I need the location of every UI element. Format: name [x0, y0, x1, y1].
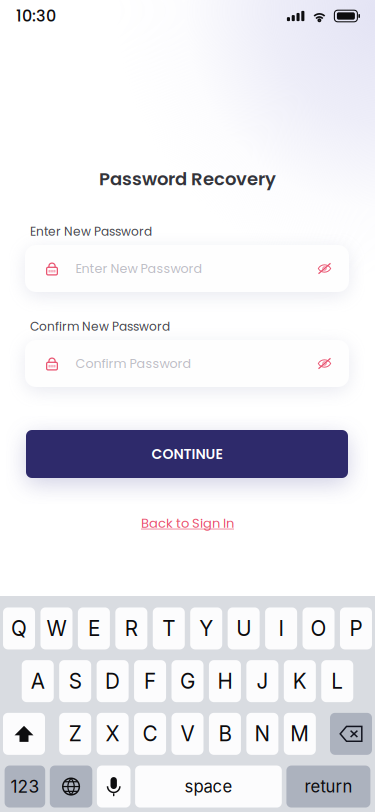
staticText: D	[105, 669, 120, 694]
staticText: return	[304, 776, 352, 797]
staticText: N	[254, 721, 270, 746]
button[interactable]: L	[321, 660, 353, 702]
button[interactable]: G	[171, 660, 203, 702]
staticText: H	[217, 669, 232, 694]
button[interactable]: Show password	[317, 261, 349, 275]
button[interactable]: Dictate	[97, 766, 130, 808]
staticText: V	[180, 721, 194, 746]
button[interactable]: Show password	[317, 356, 349, 370]
staticText: Y	[199, 616, 213, 641]
button[interactable]: J	[246, 660, 278, 702]
button[interactable]: C	[134, 713, 166, 755]
button[interactable]: Shift	[3, 713, 45, 755]
button[interactable]: U	[228, 607, 260, 649]
button[interactable]: O	[302, 607, 334, 649]
button[interactable]: V	[171, 713, 203, 755]
button[interactable]: X	[97, 713, 129, 755]
staticText: W	[46, 616, 66, 641]
staticText: P	[349, 616, 362, 641]
button[interactable]: Delete	[330, 713, 372, 755]
staticText: Enter New Password	[30, 223, 152, 240]
staticText: space	[184, 776, 232, 797]
button[interactable]: N	[246, 713, 278, 755]
staticText: 10:30	[16, 5, 56, 27]
button[interactable]: W	[40, 607, 72, 649]
staticText: X	[106, 721, 120, 746]
staticText: Enter New Password	[75, 260, 202, 277]
button[interactable]: A	[22, 660, 54, 702]
button[interactable]: 123	[5, 766, 45, 808]
staticText: A	[31, 669, 45, 694]
staticText: C	[143, 721, 158, 746]
staticText: Password Recovery	[99, 166, 276, 192]
button[interactable]: F	[134, 660, 166, 702]
button[interactable]: Next keyboard	[50, 766, 92, 808]
staticText: F	[144, 669, 156, 694]
button[interactable]: Z	[59, 713, 91, 755]
staticText: O	[310, 616, 326, 641]
staticText: I	[279, 616, 284, 641]
staticText: Confirm New Password	[30, 318, 170, 335]
staticText: L	[331, 669, 343, 694]
button[interactable]: R	[115, 607, 147, 649]
button[interactable]: return	[286, 766, 370, 808]
button[interactable]: P	[340, 607, 372, 649]
button[interactable]: D	[97, 660, 129, 702]
staticText: G	[180, 669, 195, 694]
staticText: Q	[11, 616, 27, 641]
staticText: M	[290, 721, 309, 746]
button[interactable]: B	[209, 713, 241, 755]
button[interactable]: S	[59, 660, 91, 702]
button[interactable]: space	[135, 766, 282, 808]
staticText: Back to Sign In	[141, 514, 234, 532]
staticText: J	[256, 669, 268, 694]
button[interactable]: CONTINUE	[26, 430, 348, 478]
staticText: T	[162, 616, 175, 641]
staticText: K	[293, 669, 307, 694]
staticText: E	[88, 616, 100, 641]
staticText: CONTINUE	[151, 444, 222, 464]
staticText: R	[125, 616, 138, 641]
button[interactable]: K	[284, 660, 316, 702]
button[interactable]: M	[284, 713, 316, 755]
staticText: Z	[69, 721, 82, 746]
button[interactable]: Q	[3, 607, 35, 649]
staticText: B	[218, 721, 231, 746]
button[interactable]: E	[78, 607, 110, 649]
staticText: Confirm Password	[75, 355, 191, 372]
button[interactable]: Y	[190, 607, 222, 649]
button[interactable]: T	[153, 607, 185, 649]
button[interactable]: I	[265, 607, 297, 649]
staticText: U	[236, 616, 251, 641]
staticText: S	[69, 669, 82, 694]
button[interactable]: Back to Sign In	[141, 514, 234, 532]
staticText: 123	[10, 776, 39, 797]
button[interactable]: H	[209, 660, 241, 702]
